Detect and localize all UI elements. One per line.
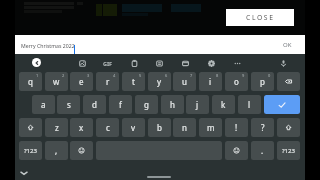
- staticText: OK: [283, 41, 292, 49]
- staticText: n: [182, 122, 187, 133]
- staticText: v: [131, 122, 136, 133]
- button[interactable]: a: [32, 95, 55, 114]
- staticText: h: [170, 99, 175, 110]
- staticText: i: [209, 76, 212, 87]
- button[interactable]: g: [135, 95, 158, 114]
- staticText: GIF: [103, 60, 113, 67]
- button[interactable]: r: [96, 72, 119, 91]
- button[interactable]: w: [45, 72, 68, 91]
- staticText: CLOSE: [246, 13, 275, 22]
- staticText: x: [79, 122, 84, 133]
- staticText: g: [144, 99, 149, 110]
- button[interactable]: f: [109, 95, 132, 114]
- button[interactable]: k: [212, 95, 235, 114]
- button[interactable]: u: [173, 72, 196, 91]
- button[interactable]: Emoji: [225, 141, 248, 160]
- staticText: w: [53, 76, 60, 87]
- button[interactable]: ?123: [19, 141, 42, 160]
- button[interactable]: l: [238, 95, 261, 114]
- staticText: f: [119, 99, 122, 110]
- button[interactable]: p: [251, 72, 274, 91]
- button[interactable]: .: [251, 141, 274, 160]
- button[interactable]: s: [57, 95, 80, 114]
- staticText: ?123: [24, 147, 37, 155]
- staticText: p: [260, 76, 265, 87]
- button[interactable]: Settings: [202, 54, 220, 72]
- button[interactable]: x: [70, 118, 93, 137]
- button[interactable]: Text editing: [150, 54, 168, 72]
- button[interactable]: More options: [228, 54, 246, 72]
- staticText: 8: [216, 73, 219, 78]
- button[interactable]: Enter: [264, 95, 300, 114]
- button[interactable]: Translate: [176, 54, 194, 72]
- staticText: k: [221, 99, 226, 110]
- button[interactable]: t: [122, 72, 145, 91]
- button[interactable]: Clipboard: [125, 54, 143, 72]
- button[interactable]: Stickers: [73, 54, 91, 72]
- button[interactable]: GIF: [99, 54, 117, 72]
- staticText: 7: [190, 73, 193, 78]
- staticText: e: [79, 76, 84, 87]
- button[interactable]: d: [83, 95, 106, 114]
- staticText: t: [132, 76, 135, 87]
- staticText: m: [207, 122, 215, 133]
- staticText: c: [106, 122, 110, 133]
- button[interactable]: Merry Christmas 2022: [15, 35, 305, 55]
- staticText: s: [67, 99, 71, 110]
- button[interactable]: ,: [45, 141, 68, 160]
- staticText: 5: [139, 73, 142, 78]
- staticText: 4: [113, 73, 116, 78]
- staticText: 9: [242, 73, 245, 78]
- button[interactable]: j: [186, 95, 209, 114]
- button[interactable]: o: [225, 72, 248, 91]
- button[interactable]: b: [148, 118, 171, 137]
- button[interactable]: y: [148, 72, 171, 91]
- staticText: 2: [62, 73, 65, 78]
- staticText: l: [248, 99, 251, 110]
- button[interactable]: Emoji: [70, 141, 93, 160]
- button[interactable]: ?123: [277, 141, 300, 160]
- button[interactable]: h: [161, 95, 184, 114]
- staticText: y: [157, 76, 162, 87]
- button[interactable]: Shift: [277, 118, 300, 137]
- button[interactable]: c: [96, 118, 119, 137]
- staticText: b: [157, 122, 162, 133]
- staticText: q: [28, 76, 33, 87]
- staticText: 1: [36, 73, 39, 78]
- staticText: j: [196, 99, 199, 110]
- button[interactable]: Back: [18, 167, 29, 178]
- button[interactable]: CLOSE: [226, 9, 294, 26]
- button[interactable]: e: [70, 72, 93, 91]
- staticText: 6: [165, 73, 168, 78]
- button[interactable]: Voice input: [274, 54, 292, 72]
- button[interactable]: ?: [251, 118, 274, 137]
- staticText: z: [55, 122, 59, 133]
- button[interactable]: Shift: [19, 118, 42, 137]
- staticText: 0: [268, 73, 271, 78]
- button[interactable]: q: [19, 72, 42, 91]
- staticText: ?123: [282, 147, 295, 155]
- button[interactable]: m: [199, 118, 222, 137]
- button[interactable]: v: [122, 118, 145, 137]
- staticText: 3: [87, 73, 90, 78]
- staticText: ,: [55, 145, 58, 156]
- button[interactable]: i: [199, 72, 222, 91]
- button[interactable]: !: [225, 118, 248, 137]
- staticText: d: [92, 99, 97, 110]
- button[interactable]: n: [173, 118, 196, 137]
- button[interactable]: Show toolbar: [32, 58, 41, 67]
- staticText: u: [182, 76, 187, 87]
- staticText: a: [41, 99, 46, 110]
- staticText: o: [234, 76, 239, 87]
- staticText: r: [106, 76, 110, 87]
- staticText: !: [235, 122, 238, 133]
- staticText: ?: [261, 122, 265, 133]
- staticText: Merry Christmas 2022: [21, 42, 75, 49]
- button[interactable]: Home: [147, 176, 171, 178]
- button[interactable]: z: [45, 118, 68, 137]
- staticText: .: [261, 145, 264, 156]
- button[interactable]: Backspace: [277, 72, 300, 91]
